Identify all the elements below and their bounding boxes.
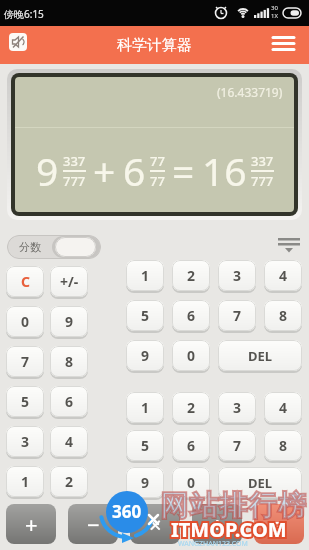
- staticText: 9: [141, 346, 150, 365]
- staticText: 2: [65, 472, 74, 491]
- staticText: =: [172, 144, 195, 197]
- button[interactable]: 0: [6, 306, 44, 337]
- staticText: 0: [187, 346, 196, 365]
- staticText: 1X: [271, 12, 278, 20]
- button[interactable]: =: [254, 504, 304, 544]
- button[interactable]: DEL: [218, 467, 302, 498]
- staticText: 7: [233, 436, 242, 455]
- staticText: ITMOP.COM: [171, 516, 287, 543]
- button[interactable]: 8: [50, 346, 88, 377]
- button[interactable]: 4: [50, 426, 88, 457]
- button[interactable]: [272, 36, 296, 54]
- button[interactable]: 8: [264, 300, 302, 331]
- staticText: 337: [251, 152, 274, 170]
- button[interactable]: 分数: [7, 235, 101, 259]
- button[interactable]: 5: [126, 300, 164, 331]
- staticText: 3: [233, 266, 242, 285]
- staticText: 8: [279, 436, 288, 455]
- staticText: +: [25, 509, 38, 539]
- staticText: 1: [21, 472, 30, 491]
- staticText: 2: [187, 266, 196, 285]
- button[interactable]: ÷: [192, 504, 242, 544]
- staticText: 8: [65, 352, 74, 371]
- staticText: 16: [202, 144, 247, 197]
- staticText: 网站排行榜: [160, 488, 308, 523]
- button[interactable]: 9: [126, 467, 164, 498]
- staticText: 5: [141, 306, 150, 325]
- button[interactable]: 2: [172, 392, 210, 423]
- button[interactable]: +: [6, 504, 56, 544]
- staticText: 0: [21, 312, 30, 331]
- staticText: DEL: [248, 474, 273, 492]
- staticText: (16.433719): [217, 84, 283, 100]
- button[interactable]: 2: [50, 466, 88, 497]
- button[interactable]: 5: [6, 386, 44, 417]
- staticText: 傍晚6:15: [4, 7, 44, 21]
- staticText: 网站排行榜: [160, 488, 308, 523]
- staticText: 科学计算器: [117, 36, 192, 55]
- button[interactable]: 1: [126, 392, 164, 423]
- staticText: +/-: [60, 272, 79, 291]
- staticText: 1: [141, 398, 150, 417]
- staticText: 6: [187, 306, 196, 325]
- staticText: 6: [65, 392, 74, 411]
- button[interactable]: 6: [172, 430, 210, 461]
- staticText: 3: [21, 432, 30, 451]
- button[interactable]: 3: [6, 426, 44, 457]
- staticText: 8: [279, 306, 288, 325]
- button[interactable]: 4: [264, 260, 302, 291]
- button[interactable]: ×: [130, 504, 180, 544]
- staticText: 3: [233, 398, 242, 417]
- button[interactable]: [278, 238, 300, 254]
- button[interactable]: 8: [264, 430, 302, 461]
- staticText: 0: [187, 473, 196, 492]
- button[interactable]: 1: [6, 466, 44, 497]
- button[interactable]: 5: [126, 430, 164, 461]
- button[interactable]: 4: [264, 392, 302, 423]
- button[interactable]: −: [68, 504, 118, 544]
- staticText: 1: [141, 266, 150, 285]
- button[interactable]: 0: [172, 340, 210, 371]
- button[interactable]: 360: [112, 500, 142, 523]
- button[interactable]: 2: [172, 260, 210, 291]
- staticText: 5: [141, 436, 150, 455]
- staticText: ÷: [211, 509, 224, 539]
- staticText: 77: [150, 152, 165, 170]
- staticText: =: [273, 509, 286, 539]
- staticText: 777: [63, 172, 86, 190]
- button[interactable]: C: [6, 266, 44, 297]
- button[interactable]: 1: [126, 260, 164, 291]
- staticText: C: [21, 272, 30, 291]
- staticText: 分数: [19, 240, 41, 254]
- button[interactable]: 7: [218, 300, 256, 331]
- button[interactable]: 7: [218, 430, 256, 461]
- staticText: 6: [123, 144, 146, 197]
- button[interactable]: [9, 33, 27, 51]
- staticText: 777: [251, 172, 274, 190]
- staticText: ITMOP.COM: [171, 516, 287, 543]
- staticText: 9: [65, 312, 74, 331]
- staticText: 30: [271, 4, 278, 12]
- button[interactable]: 9: [50, 306, 88, 337]
- staticText: 4: [279, 398, 288, 417]
- staticText: 4: [65, 432, 74, 451]
- button[interactable]: 7: [6, 346, 44, 377]
- staticText: ×: [149, 509, 162, 539]
- staticText: −: [87, 509, 100, 539]
- staticText: 9: [141, 473, 150, 492]
- button[interactable]: 3: [218, 260, 256, 291]
- button[interactable]: 6: [172, 300, 210, 331]
- staticText: +: [93, 144, 116, 197]
- staticText: 77: [150, 172, 165, 190]
- staticText: 337: [63, 152, 86, 170]
- staticText: 5: [21, 392, 30, 411]
- staticText: DEL: [248, 347, 273, 365]
- button[interactable]: +/-: [50, 266, 88, 297]
- button[interactable]: DEL: [218, 340, 302, 371]
- staticText: 7: [233, 306, 242, 325]
- button[interactable]: 3: [218, 392, 256, 423]
- staticText: WANGZHAN123.COM: [178, 539, 248, 549]
- button[interactable]: 6: [50, 386, 88, 417]
- button[interactable]: 9: [126, 340, 164, 371]
- button[interactable]: 0: [172, 467, 210, 498]
